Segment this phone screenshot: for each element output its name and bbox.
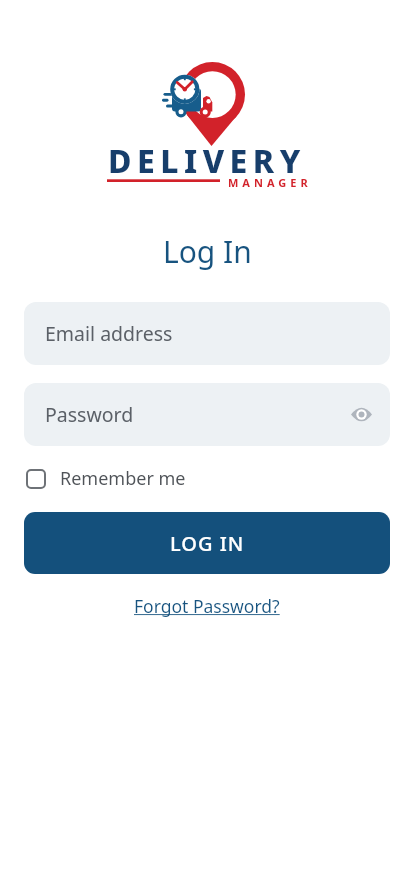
staticText: MANAGER [228, 175, 312, 190]
button[interactable]: LOG IN [24, 512, 390, 574]
staticText: Password [45, 401, 134, 428]
button[interactable]: Remember me [26, 466, 186, 491]
staticText: LOG IN [170, 530, 245, 557]
staticText: Remember me [60, 466, 186, 491]
staticText: Email address [45, 320, 173, 347]
button[interactable]: Password [24, 383, 390, 446]
button[interactable]: Forgot Password? [134, 594, 280, 618]
staticText: Log In [163, 231, 252, 272]
staticText: DELIVERY [108, 139, 306, 183]
button[interactable]: Email address [24, 302, 390, 365]
